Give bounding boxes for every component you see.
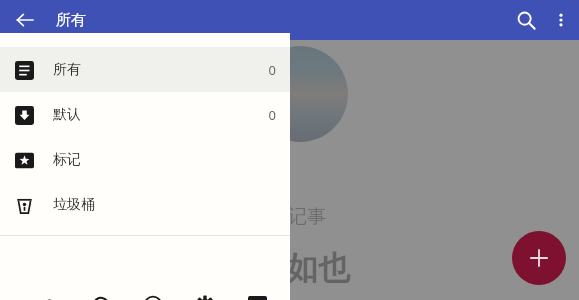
button[interactable]: 更多选项	[545, 3, 577, 37]
staticText: 垃圾桶	[53, 196, 95, 214]
button[interactable]: 所有	[0, 47, 290, 92]
button[interactable]: 搜索	[507, 1, 545, 39]
button[interactable]: 垃圾桶	[0, 182, 290, 227]
staticText: 所有	[56, 11, 86, 30]
staticText: 所有	[53, 61, 81, 79]
button[interactable]: 新建	[512, 231, 566, 285]
staticText: 默认	[53, 106, 81, 124]
button[interactable]: 标记	[0, 137, 290, 182]
button[interactable]: 表情	[136, 288, 170, 300]
button[interactable]: 设置	[188, 288, 222, 300]
staticText: 记事	[288, 205, 326, 229]
button[interactable]: 默认	[0, 92, 290, 137]
staticText: 0	[268, 106, 276, 124]
staticText: 标记	[53, 151, 81, 169]
staticText: 0	[268, 61, 276, 79]
button[interactable]: 云同步	[32, 288, 66, 300]
staticText: 如也	[286, 248, 350, 288]
button[interactable]: 编辑	[240, 288, 274, 300]
button[interactable]: 历史记录	[84, 288, 118, 300]
button[interactable]: 返回	[8, 3, 42, 37]
